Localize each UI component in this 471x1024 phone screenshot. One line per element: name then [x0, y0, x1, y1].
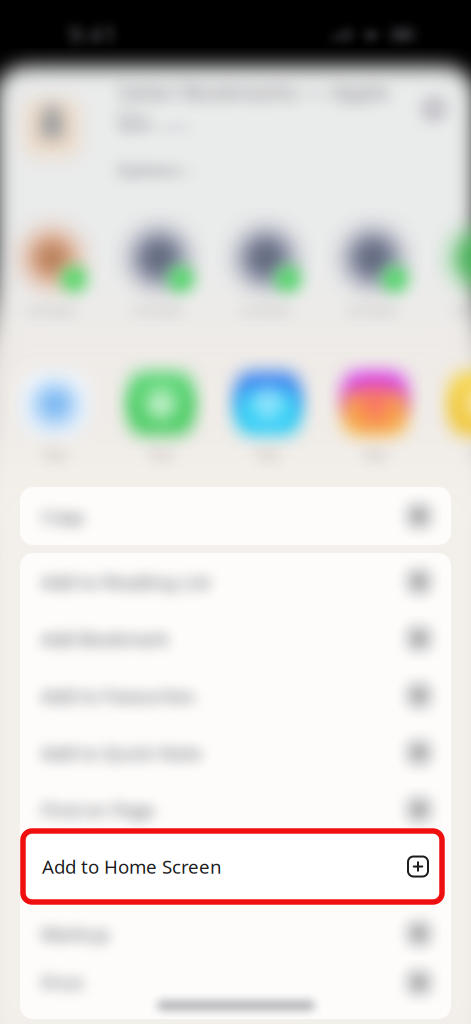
button[interactable]: Add to Favourites — [20, 667, 451, 724]
button[interactable]: Find on Page — [20, 781, 451, 838]
staticText: Add to Home Screen — [42, 854, 222, 879]
button[interactable]: Add to Quick Note — [20, 724, 451, 781]
button[interactable]: Print — [20, 954, 451, 1011]
button[interactable]: Add Bookmark — [20, 610, 451, 667]
button[interactable]: Add to Home Screen — [23, 831, 442, 902]
button[interactable]: Add to Reading List — [20, 553, 451, 610]
button[interactable]: Markup — [20, 905, 451, 962]
